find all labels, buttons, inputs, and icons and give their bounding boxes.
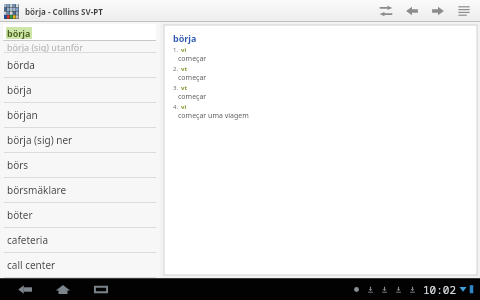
button[interactable]: böter xyxy=(0,203,160,228)
staticText: vi xyxy=(181,46,187,54)
staticText: börja xyxy=(7,83,32,97)
staticText: 2. xyxy=(173,65,179,73)
button[interactable]: Back xyxy=(399,0,425,22)
staticText: 4. xyxy=(173,103,179,111)
button[interactable]: början xyxy=(0,103,160,128)
staticText: call center xyxy=(7,258,56,272)
button[interactable]: Menu xyxy=(451,0,477,22)
button[interactable]: Recent apps xyxy=(88,279,114,299)
button[interactable]: call center xyxy=(0,253,160,278)
button[interactable]: Forward xyxy=(425,0,451,22)
button[interactable]: Swap languages xyxy=(373,0,399,22)
button[interactable]: Home xyxy=(50,279,76,299)
button[interactable]: börja xyxy=(0,78,160,103)
button[interactable]: cafeteria xyxy=(0,228,160,253)
button[interactable]: börja xyxy=(3,24,156,41)
staticText: börja - Collins SV-PT xyxy=(25,6,103,17)
button[interactable]: Back xyxy=(12,279,38,299)
staticText: börja xyxy=(7,27,31,39)
button[interactable]: börsmäklare xyxy=(0,178,160,203)
staticText: 1. xyxy=(173,46,179,54)
staticText: börda xyxy=(7,58,35,72)
button[interactable]: börda xyxy=(0,53,160,78)
staticText: vi xyxy=(181,103,187,111)
button[interactable]: börja (sig) ner xyxy=(0,128,160,153)
staticText: böter xyxy=(7,208,33,222)
staticText: börja (sig) utanför xyxy=(7,41,83,53)
staticText: 3. xyxy=(173,84,179,92)
staticText: börs xyxy=(7,158,29,172)
staticText: vt xyxy=(181,84,188,92)
button[interactable]: börs xyxy=(0,153,160,178)
button[interactable]: börja (sig) utanför xyxy=(0,41,160,53)
staticText: começar xyxy=(178,92,207,102)
staticText: cafeteria xyxy=(7,233,49,247)
staticText: början xyxy=(7,108,38,122)
staticText: vt xyxy=(181,65,188,73)
staticText: começar xyxy=(178,54,207,64)
staticText: börja (sig) ner xyxy=(7,133,73,147)
staticText: 10:02 xyxy=(423,282,456,297)
staticText: começar uma viagem xyxy=(178,111,249,121)
staticText: começar xyxy=(178,73,207,83)
staticText: börja xyxy=(173,32,197,44)
staticText: börsmäklare xyxy=(7,183,67,197)
